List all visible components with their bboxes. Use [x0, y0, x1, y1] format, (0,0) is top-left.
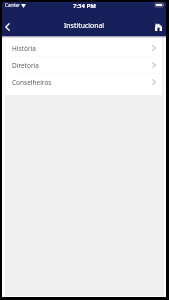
staticText: Institucional: [64, 21, 105, 30]
staticText: 7:34 PM: [73, 2, 96, 10]
button[interactable]: História: [5, 40, 162, 56]
button[interactable]: Back: [2, 14, 17, 36]
button[interactable]: Home: [150, 14, 166, 36]
staticText: Conselheiros: [12, 78, 52, 87]
staticText: História: [12, 44, 36, 53]
staticText: Carrier: [5, 2, 20, 8]
button[interactable]: Diretoria: [5, 57, 162, 73]
button[interactable]: Conselheiros: [5, 74, 162, 90]
staticText: Diretoria: [12, 61, 39, 70]
